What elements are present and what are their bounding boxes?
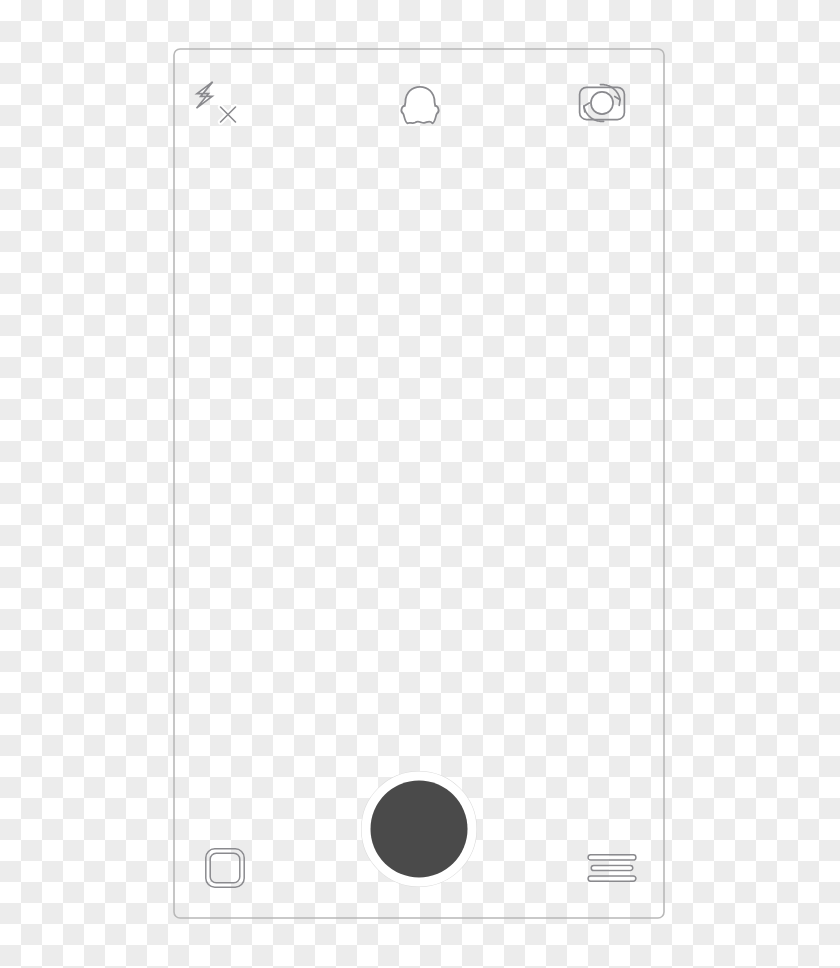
button[interactable]: Stories: [586, 846, 638, 890]
button[interactable]: Flash off: [194, 78, 244, 126]
button[interactable]: Flip camera: [574, 80, 630, 126]
button[interactable]: Capture: [361, 771, 477, 887]
button[interactable]: Snapchat: [398, 82, 442, 130]
button[interactable]: Memories: [202, 845, 248, 891]
